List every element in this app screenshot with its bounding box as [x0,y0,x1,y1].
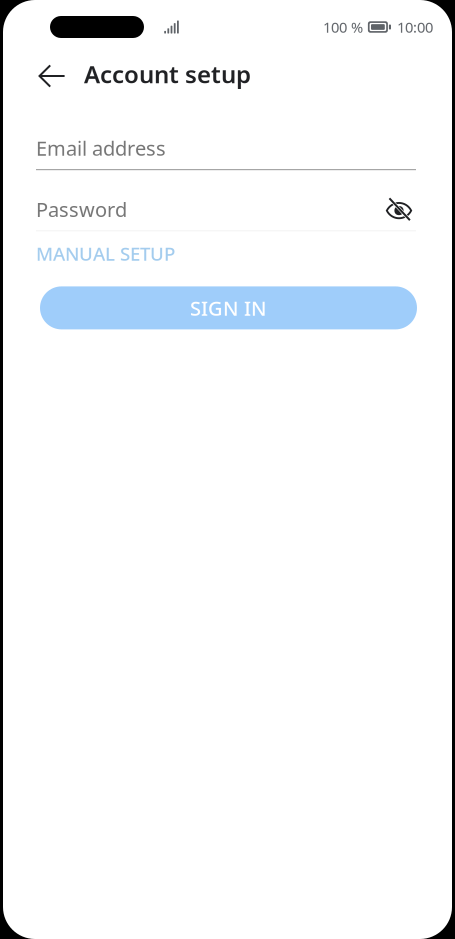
staticText: SIGN IN [190,295,267,321]
staticText: Password [36,196,127,222]
staticText: Email address [36,135,166,161]
button[interactable]: SIGN IN [40,286,417,329]
staticText: 100 % [323,17,363,37]
staticText: 10:00 [397,17,433,37]
button[interactable]: Email address [36,135,416,170]
button[interactable]: Back [30,54,74,98]
button[interactable]: Password [36,195,356,223]
staticText: MANUAL SETUP [36,241,175,266]
button[interactable]: MANUAL SETUP [36,240,175,266]
button[interactable]: Show password [382,195,416,223]
staticText: Account setup [84,58,251,90]
